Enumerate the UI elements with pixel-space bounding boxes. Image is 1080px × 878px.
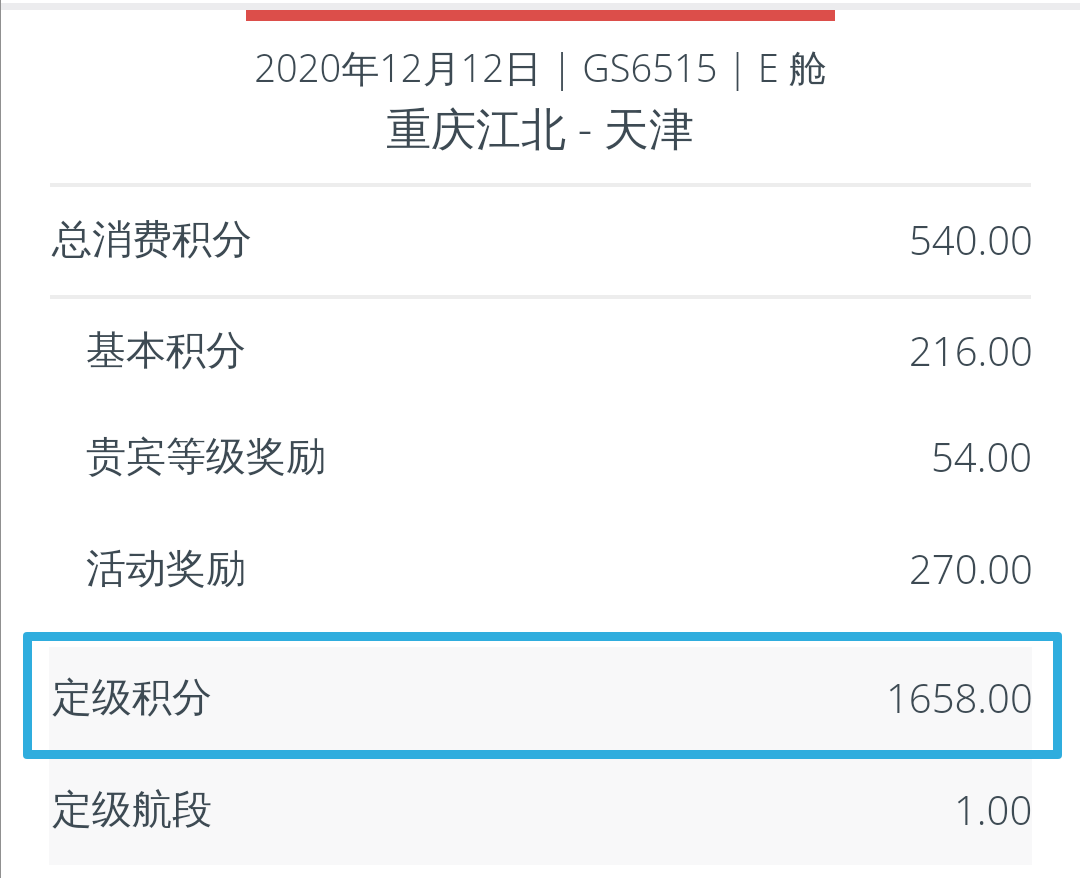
button[interactable]: 定级积分 [0, 633, 1080, 760]
staticText: 贵宾等级奖励 [86, 431, 326, 481]
staticText: 270.00 [909, 541, 1033, 595]
staticText: 216.00 [909, 323, 1033, 377]
staticText: 总消费积分 [52, 214, 252, 264]
button[interactable]: 基本积分 [0, 297, 1080, 402]
button[interactable]: 贵宾等级奖励 [0, 401, 1080, 511]
staticText: 基本积分 [86, 325, 246, 375]
staticText: 定级航段 [52, 784, 212, 834]
staticText: 活动奖励 [86, 543, 246, 593]
staticText: 重庆江北 - 天津 [386, 97, 694, 158]
staticText: 2020年12月12日 | GS6515 | E 舱 [254, 41, 827, 93]
staticText: 540.00 [909, 212, 1033, 266]
button[interactable]: 定级航段 [0, 757, 1080, 861]
staticText: 定级积分 [52, 672, 212, 722]
staticText: 54.00 [931, 429, 1033, 483]
staticText: 1658.00 [886, 670, 1033, 724]
button[interactable]: 总消费积分 [0, 188, 1080, 289]
button[interactable]: 活动奖励 [0, 511, 1080, 625]
staticText: 1.00 [954, 782, 1033, 836]
